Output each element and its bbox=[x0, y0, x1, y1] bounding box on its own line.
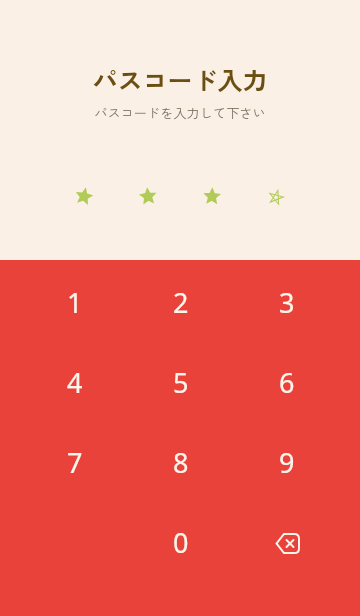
button[interactable]: Delete bbox=[234, 502, 340, 582]
button[interactable]: 1 bbox=[22, 262, 128, 342]
staticText: 1 bbox=[67, 284, 83, 321]
staticText: 6 bbox=[279, 364, 295, 401]
staticText: 5 bbox=[173, 364, 189, 401]
staticText: 4 bbox=[67, 364, 83, 401]
button[interactable]: 7 bbox=[22, 422, 128, 502]
other: Delete bbox=[275, 533, 300, 554]
button[interactable]: 8 bbox=[128, 422, 234, 502]
button[interactable]: 3 bbox=[234, 262, 340, 342]
button[interactable]: 0 bbox=[128, 502, 234, 582]
staticText: 3 bbox=[279, 284, 295, 321]
staticText: 0 bbox=[173, 524, 189, 561]
button[interactable]: 4 bbox=[22, 342, 128, 422]
button[interactable]: 5 bbox=[128, 342, 234, 422]
button[interactable]: 2 bbox=[128, 262, 234, 342]
staticText: 9 bbox=[279, 444, 295, 481]
staticText: 2 bbox=[173, 284, 189, 321]
staticText: パスコード入力 bbox=[92, 61, 268, 97]
staticText: 8 bbox=[173, 444, 189, 481]
button[interactable]: 6 bbox=[234, 342, 340, 422]
staticText: パスコードを入力して下さい bbox=[94, 103, 266, 122]
staticText: 7 bbox=[67, 444, 83, 481]
button[interactable]: 9 bbox=[234, 422, 340, 502]
